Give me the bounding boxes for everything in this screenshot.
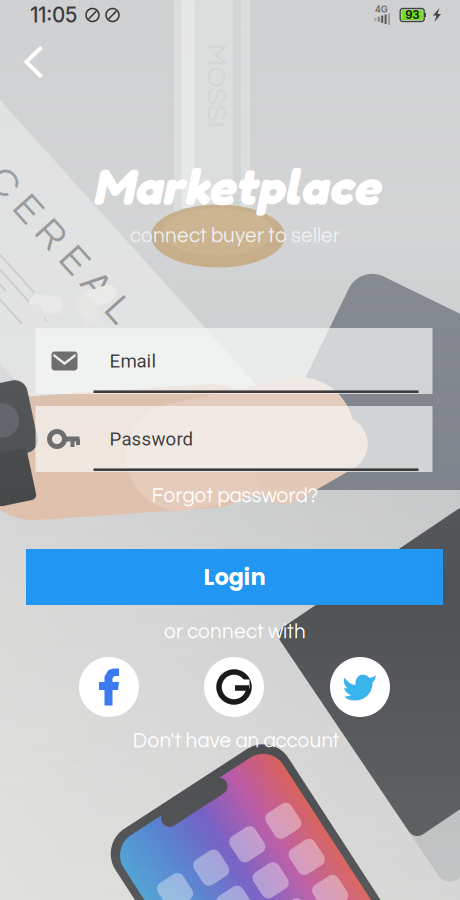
button[interactable]: Sign in with Google [204,657,264,717]
staticText: Login [203,561,265,593]
button[interactable]: Sign in with Twitter [330,657,390,717]
button[interactable]: Password [35,406,432,472]
staticText: Don't have an account [132,730,339,752]
staticText: Marketplace [92,155,379,217]
staticText: 4G [375,3,388,15]
button[interactable]: Login [26,549,443,605]
staticText: Password [109,428,193,450]
button[interactable]: Back [10,37,62,89]
staticText: Forgot password? [151,485,318,507]
staticText: or connect with [164,621,306,643]
staticText: 11:05 [30,2,77,27]
staticText: 93 [405,8,419,22]
staticText: connect buyer to seller [130,225,340,247]
button[interactable]: Don't have an account [126,724,345,758]
button[interactable]: Sign in with Facebook [79,657,139,717]
staticText: C E R E A L [0,233,121,275]
button[interactable]: Forgot password? [145,479,324,513]
button[interactable]: Email [35,328,432,394]
staticText: MOSSI [173,72,258,100]
staticText: Email [109,350,156,372]
